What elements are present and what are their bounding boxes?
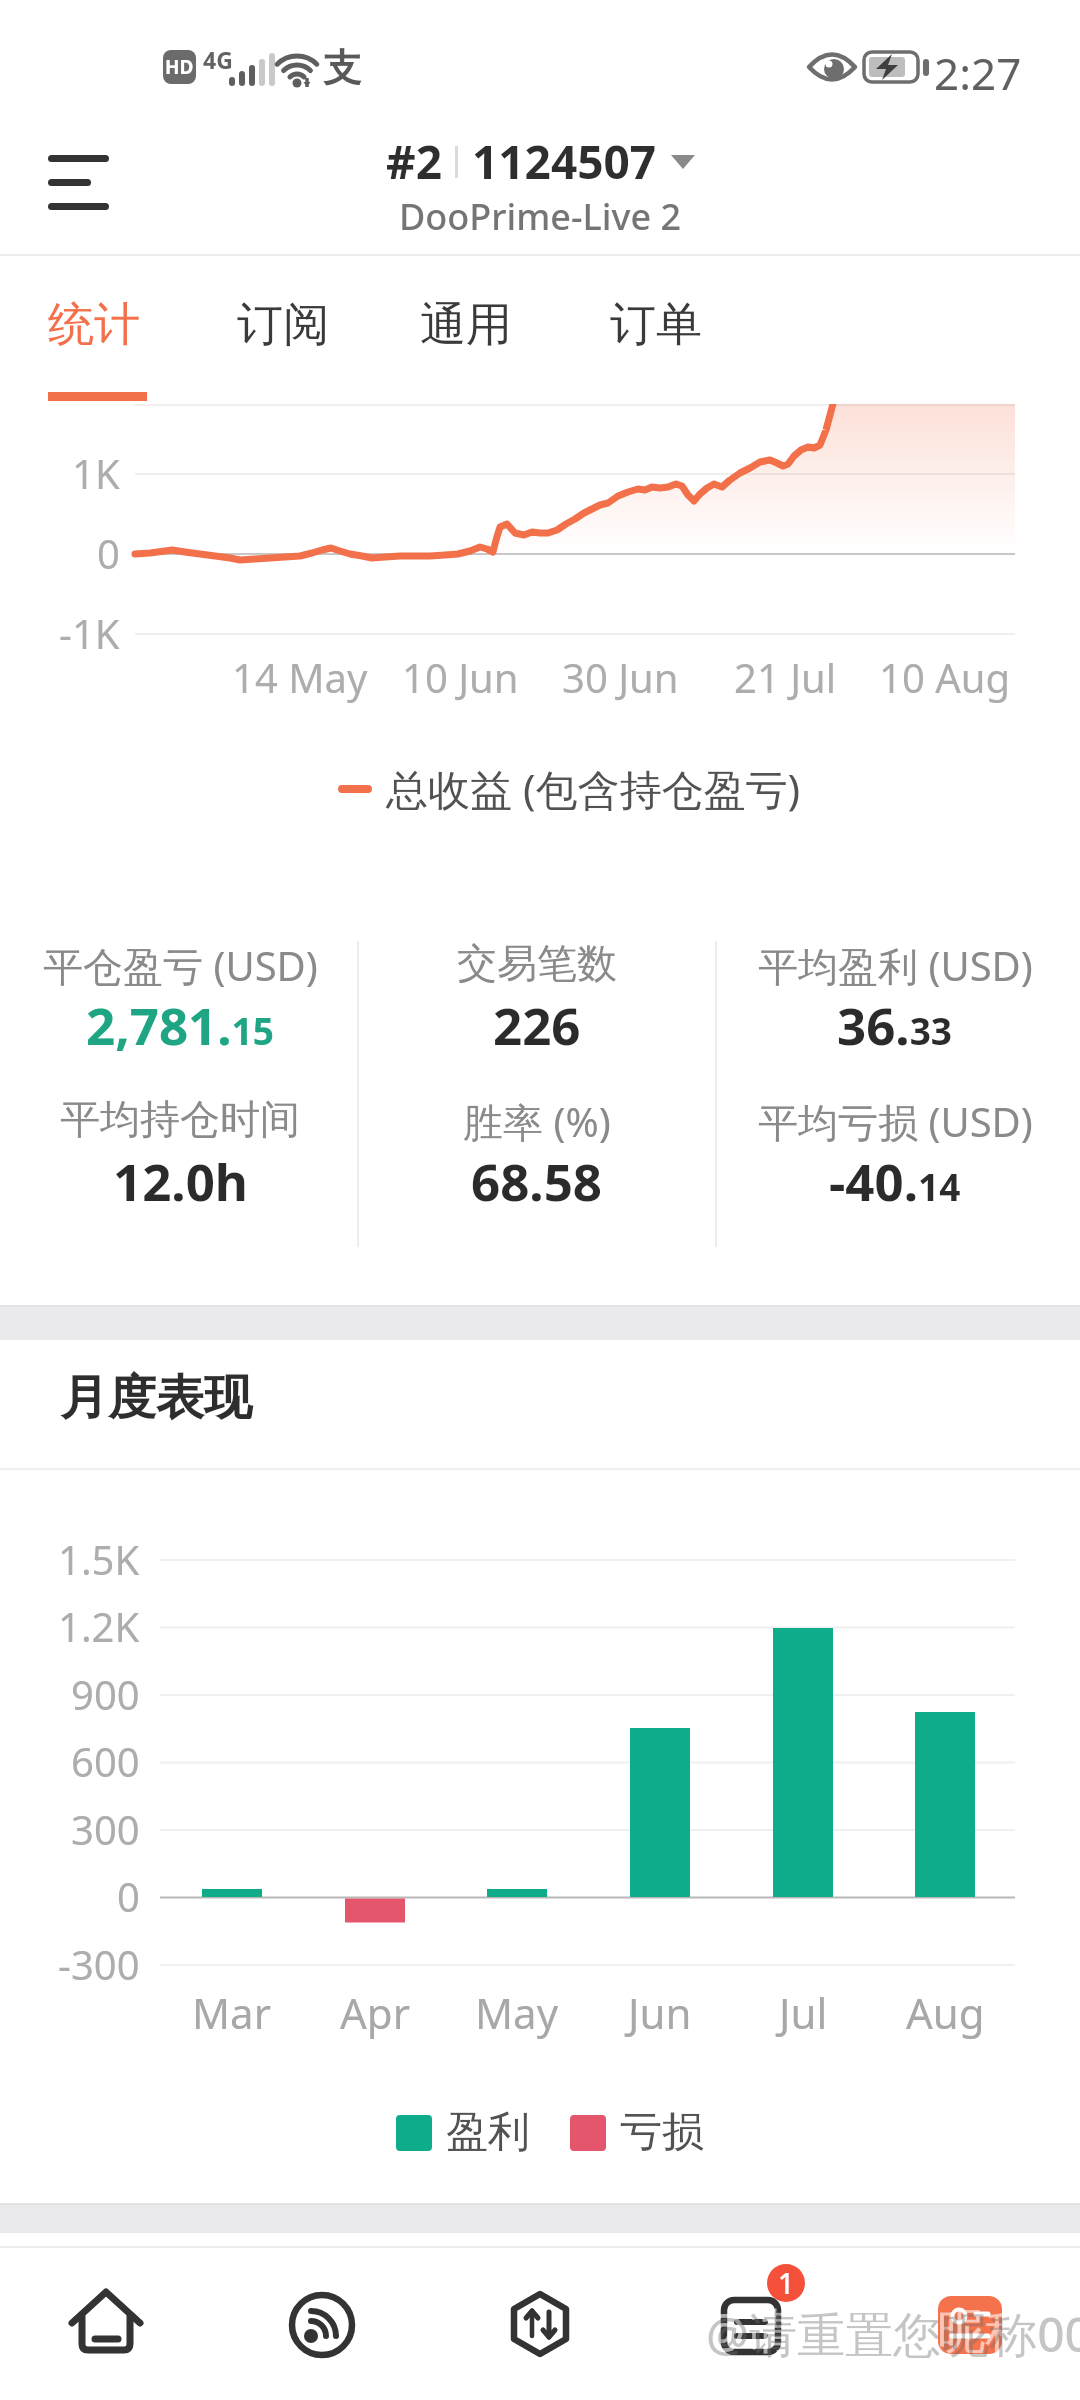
staticText: HD [165, 54, 194, 80]
button[interactable]: 统计 [48, 296, 140, 354]
staticText: 4G [203, 44, 233, 75]
staticText: Jul [779, 1984, 828, 2041]
staticText: 订阅 [237, 296, 329, 354]
staticText: 亏损 [620, 2106, 704, 2159]
staticText: 1124507 [472, 130, 657, 193]
staticText: 10 Aug [879, 650, 1011, 704]
staticText: 30 Jun [562, 650, 679, 704]
staticText: DooPrime-Live 2 [399, 192, 682, 241]
staticText: 总收益 (包含持仓盈亏) [386, 760, 801, 817]
button[interactable] [276, 2280, 368, 2372]
staticText: @请重置您昵称001 [706, 2301, 1080, 2367]
button[interactable]: 订阅 [237, 296, 329, 354]
staticText: 600 [71, 1734, 140, 1788]
button[interactable]: 1 [710, 2258, 820, 2372]
staticText: 0 [97, 526, 120, 580]
staticText: -1K [59, 606, 120, 660]
staticText: Apr [340, 1984, 411, 2041]
staticText: 平均持仓时间 [60, 1094, 300, 1144]
staticText: 36.33 [837, 990, 953, 1059]
staticText: 21 Jul [734, 650, 837, 704]
staticText: Jun [628, 1984, 692, 2041]
staticText: -40.14 [829, 1146, 961, 1215]
staticText: -300 [58, 1937, 140, 1991]
staticText: 300 [71, 1802, 140, 1856]
staticText: 盈利 [446, 2106, 530, 2159]
staticText: 2:27 [934, 43, 1022, 103]
staticText: 支 [323, 44, 361, 92]
staticText: 1.5K [58, 1532, 140, 1586]
button[interactable]: #2 [386, 130, 695, 193]
button[interactable]: 通用 [420, 296, 512, 354]
staticText: 68.58 [471, 1146, 603, 1215]
staticText: 1K [72, 446, 120, 500]
staticText: May [475, 1984, 559, 2041]
staticText: 226 [493, 990, 581, 1059]
staticText: 通用 [420, 296, 512, 354]
staticText: Mar [192, 1984, 272, 2041]
staticText: #2 [386, 130, 443, 193]
staticText: @请重置您昵称001 [702, 2297, 1080, 2363]
button[interactable]: 亏损 [570, 2106, 704, 2159]
staticText: 14 May [232, 650, 368, 704]
staticText: 订单 [610, 296, 702, 354]
staticText: 10 Jun [402, 650, 519, 704]
staticText: 平均盈利 (USD) [758, 938, 1033, 993]
staticText: 900 [71, 1667, 140, 1721]
staticText: 平均亏损 (USD) [758, 1094, 1033, 1149]
staticText: 1 [778, 2264, 795, 2302]
button[interactable] [938, 2296, 1002, 2354]
staticText: 交易笔数 [457, 938, 617, 988]
button[interactable] [36, 143, 126, 223]
button[interactable]: 总收益 (包含持仓盈亏) [338, 760, 801, 817]
button[interactable]: 订单 [610, 296, 702, 354]
staticText: 12.0h [113, 1146, 248, 1215]
staticText: 2,781.15 [86, 990, 274, 1059]
staticText: Aug [906, 1984, 985, 2041]
staticText: 月度表现 [60, 1368, 252, 1428]
button[interactable] [494, 2280, 586, 2372]
staticText: 平仓盈亏 (USD) [43, 938, 318, 993]
staticText: 1.2K [58, 1599, 140, 1653]
staticText: 胜率 (%) [463, 1094, 611, 1149]
staticText: 0 [117, 1869, 140, 1923]
staticText: 统计 [48, 296, 140, 354]
button[interactable]: 盈利 [396, 2106, 530, 2159]
button[interactable] [60, 2280, 152, 2372]
